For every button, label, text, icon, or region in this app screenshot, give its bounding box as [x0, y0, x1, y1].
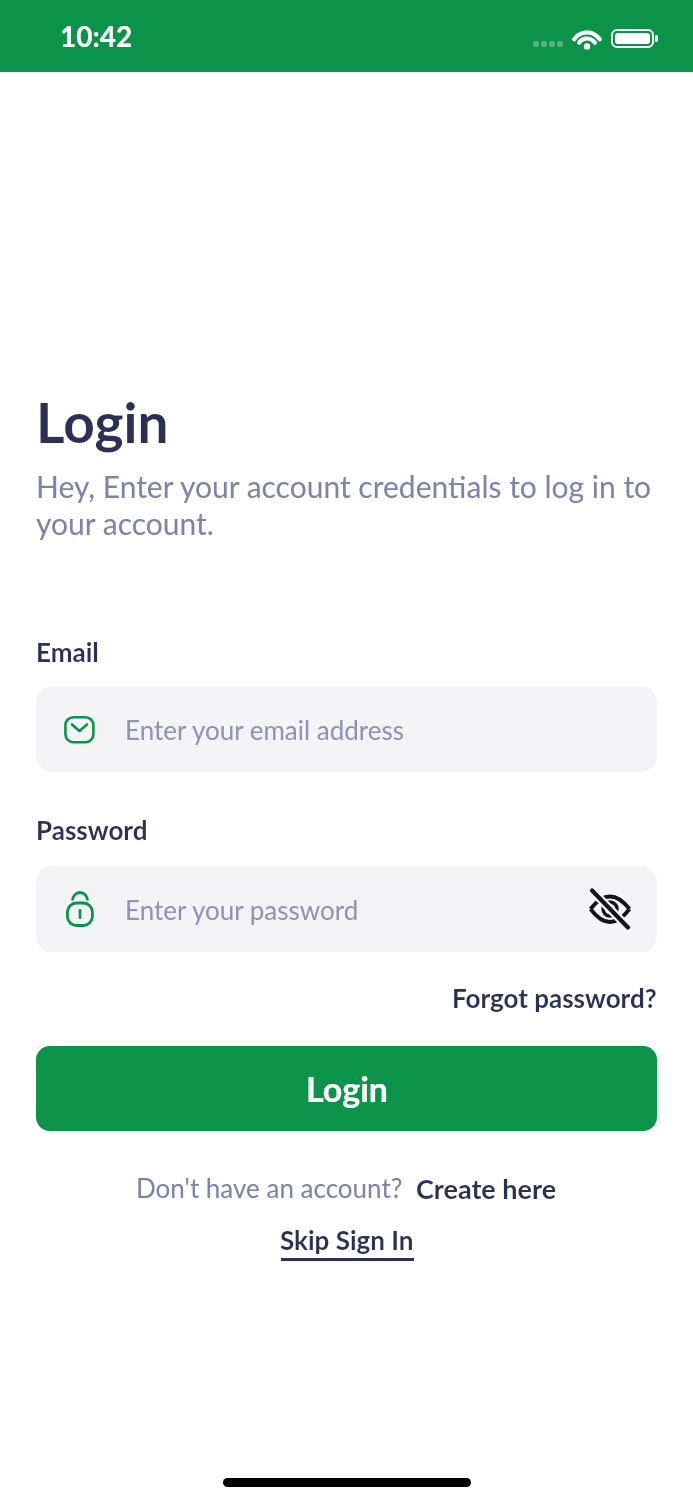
staticText: Enter your email address — [125, 714, 405, 745]
staticText: Email — [36, 636, 99, 667]
staticText: Don't have an account? — [136, 1172, 416, 1203]
staticText: Login — [36, 389, 169, 455]
button[interactable]: Skip Sign In — [280, 1224, 414, 1261]
staticText: Enter your password — [125, 894, 359, 925]
button[interactable]: Create here — [416, 1172, 557, 1204]
button[interactable]: Enter your password — [36, 866, 657, 952]
staticText: Skip Sign In — [280, 1224, 414, 1255]
button[interactable]: Forgot password? — [452, 982, 657, 1013]
staticText: 10:42 — [60, 19, 133, 53]
staticText: Hey, Enter your account credentials to l… — [36, 468, 657, 542]
button[interactable]: Enter your email address — [36, 686, 657, 772]
staticText: Login — [306, 1068, 388, 1109]
button[interactable] — [579, 878, 641, 940]
staticText: Password — [36, 814, 148, 845]
button[interactable]: Login — [36, 1046, 657, 1131]
